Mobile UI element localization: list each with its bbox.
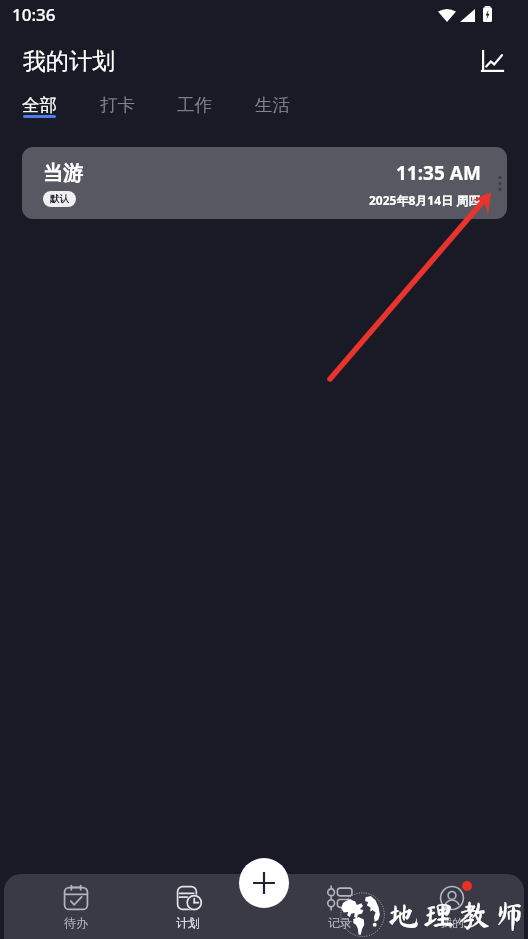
button[interactable]: 记录 <box>312 874 368 939</box>
button[interactable]: 工作 <box>166 90 222 120</box>
button[interactable]: Add <box>239 858 289 908</box>
staticText: 记录 <box>328 915 352 930</box>
staticText: 我的计划 <box>23 47 115 76</box>
button[interactable]: Statistics <box>472 41 512 81</box>
button[interactable]: More options <box>489 172 507 194</box>
button[interactable]: 打卡 <box>89 90 145 120</box>
button[interactable]: 待办 <box>48 874 104 939</box>
staticText: 工作 <box>177 94 212 116</box>
staticText: 10:36 <box>12 3 56 26</box>
button[interactable]: 生活 <box>244 90 300 120</box>
staticText: 当游 <box>43 161 83 186</box>
staticText: 计划 <box>176 915 200 930</box>
staticText: 地理教师 <box>387 899 528 931</box>
staticText: 2025年8月14日 周四 <box>369 192 481 208</box>
staticText: 全部 <box>22 94 57 116</box>
staticText: 我的 <box>440 915 464 930</box>
staticText: 打卡 <box>100 94 135 116</box>
staticText: 默认 <box>50 193 69 205</box>
staticText: 生活 <box>255 94 290 116</box>
staticText: 待办 <box>64 915 88 930</box>
button[interactable]: 全部 <box>11 90 67 120</box>
button[interactable]: 当游 <box>22 147 507 219</box>
button[interactable]: 计划 <box>160 874 216 939</box>
button[interactable]: 我的 <box>424 874 480 939</box>
staticText: 11:35 AM <box>396 160 481 186</box>
